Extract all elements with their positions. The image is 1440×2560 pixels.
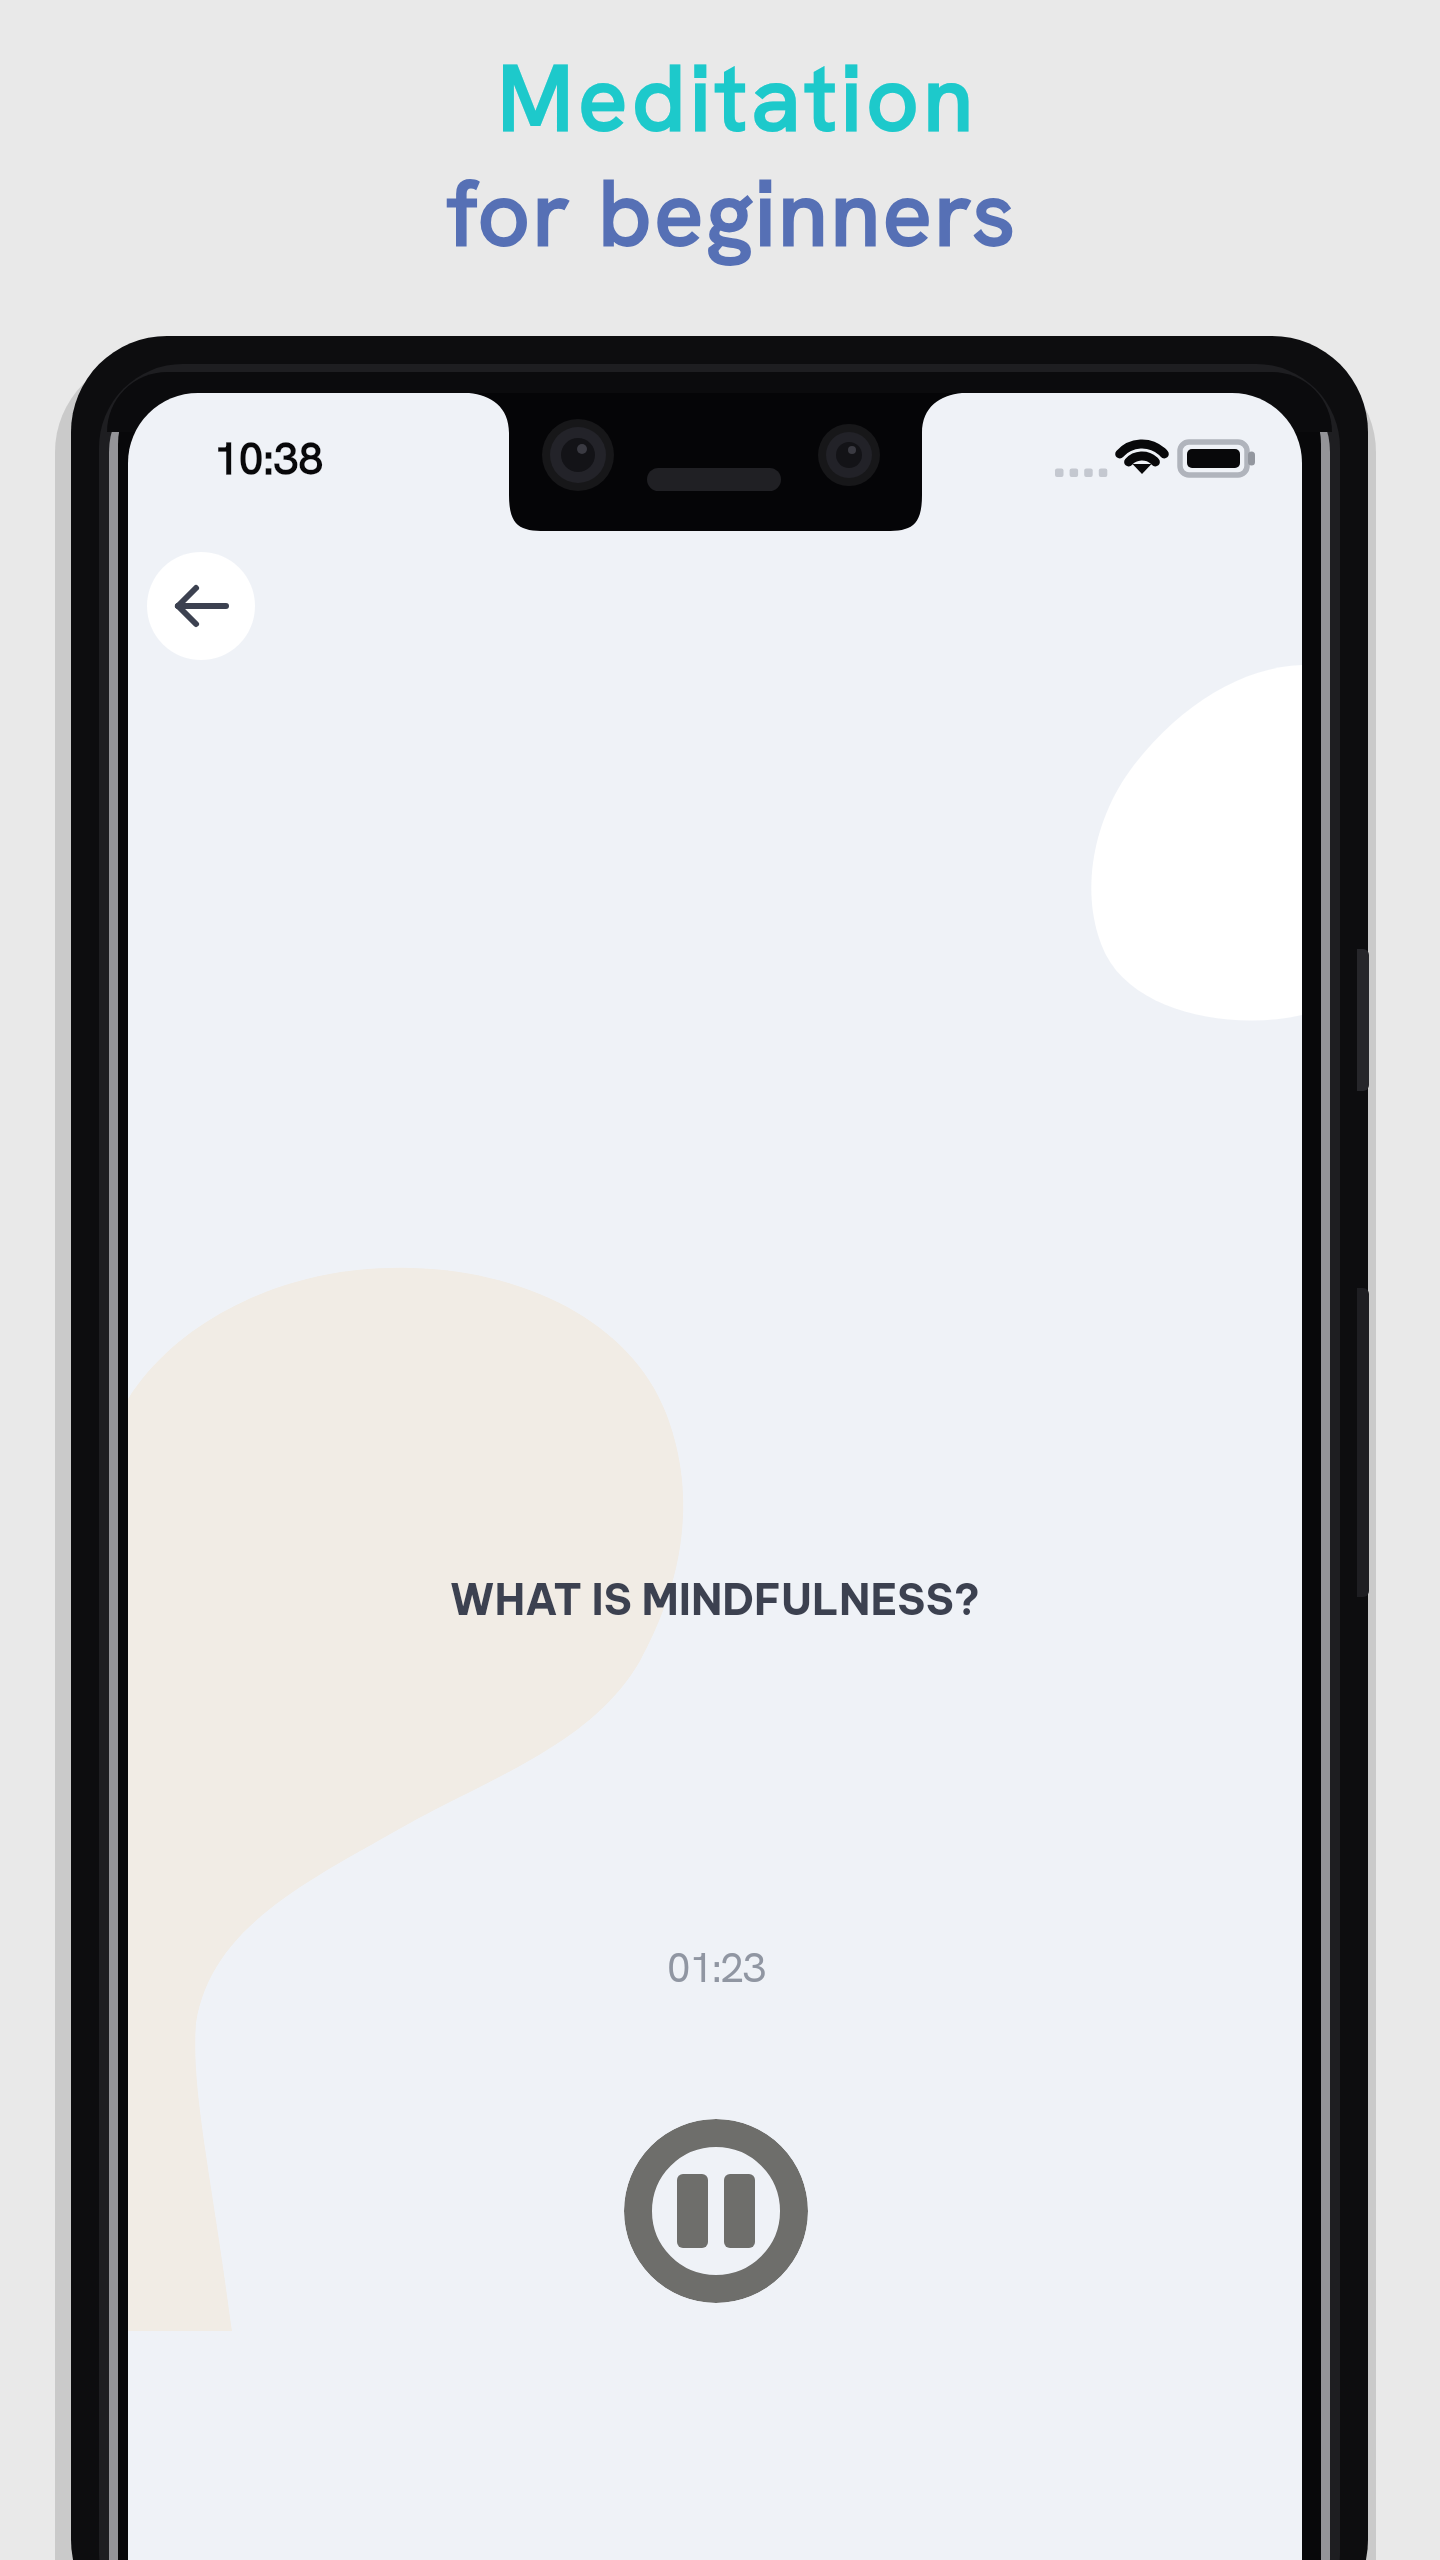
staticText: WHAT IS MINDFULNESS? — [450, 1573, 980, 1626]
button[interactable]: Back — [147, 552, 255, 660]
staticText: 10:38 — [214, 430, 324, 487]
staticText: 01:23 — [667, 1940, 766, 1995]
staticText: for beginners — [447, 154, 1018, 273]
button[interactable]: Pause — [624, 2119, 808, 2303]
staticText: Meditation — [497, 39, 978, 158]
